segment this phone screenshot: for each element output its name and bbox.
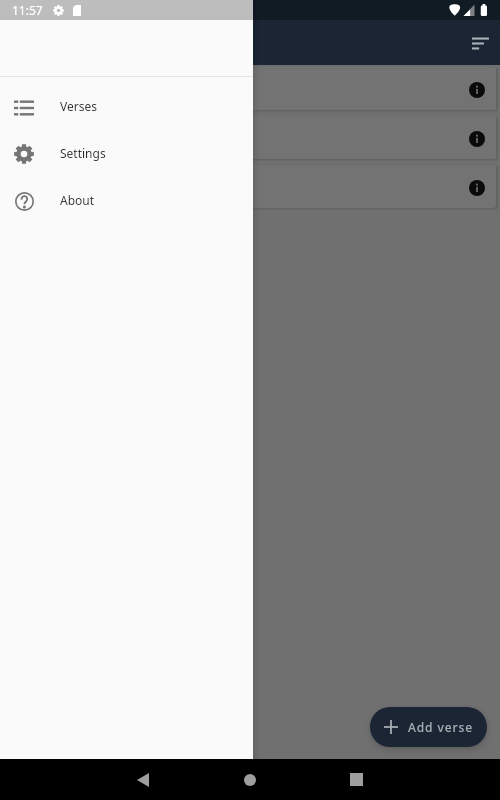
button[interactable]: Info bbox=[464, 125, 490, 151]
button[interactable]: Info bbox=[464, 76, 490, 102]
staticText: Add verse bbox=[408, 719, 473, 735]
staticText: Settings bbox=[60, 145, 106, 161]
button[interactable]: Settings bbox=[0, 129, 253, 176]
button[interactable]: Back bbox=[119, 759, 167, 800]
button[interactable]: About bbox=[0, 176, 253, 223]
button[interactable]: Info bbox=[4, 116, 496, 159]
staticText: 11:57 bbox=[12, 2, 43, 18]
staticText: Verses bbox=[60, 98, 97, 114]
button[interactable]: Home bbox=[226, 759, 274, 800]
button[interactable]: Info bbox=[4, 67, 496, 110]
button[interactable]: Add verse bbox=[370, 707, 487, 747]
button[interactable]: Info bbox=[464, 174, 490, 200]
staticText: About bbox=[60, 192, 95, 208]
button[interactable]: Info bbox=[4, 165, 496, 208]
button[interactable]: Verses bbox=[0, 82, 253, 129]
button[interactable]: Close navigation drawer bbox=[0, 65, 500, 759]
button[interactable]: Recents bbox=[332, 759, 380, 800]
button[interactable]: Sort bbox=[462, 25, 498, 61]
